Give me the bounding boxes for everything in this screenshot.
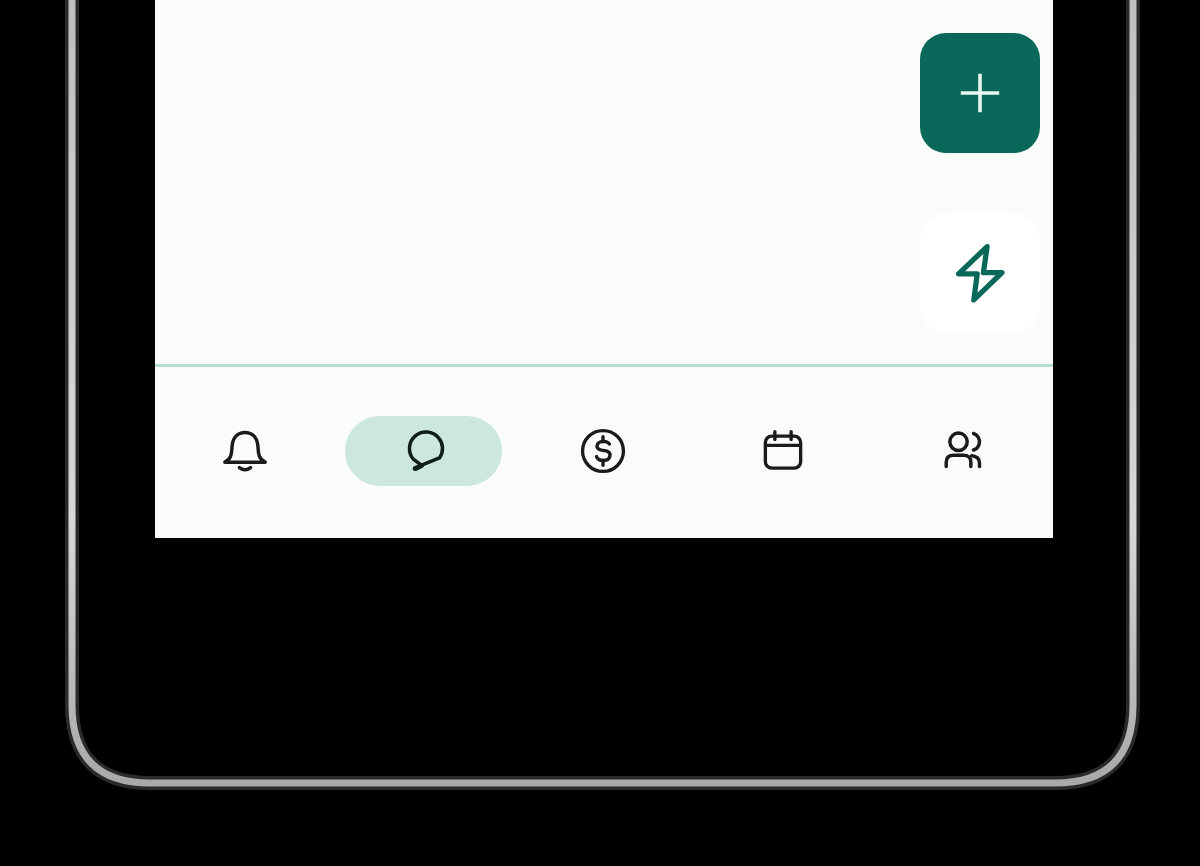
button[interactable]: Payments — [555, 416, 651, 486]
button[interactable]: Calendar — [735, 416, 831, 486]
button[interactable]: Quick action — [920, 213, 1040, 333]
button[interactable]: Notifications — [197, 416, 293, 486]
button[interactable]: Chat — [345, 416, 502, 486]
button[interactable]: Add — [920, 33, 1040, 153]
button[interactable]: Contacts — [915, 416, 1011, 486]
